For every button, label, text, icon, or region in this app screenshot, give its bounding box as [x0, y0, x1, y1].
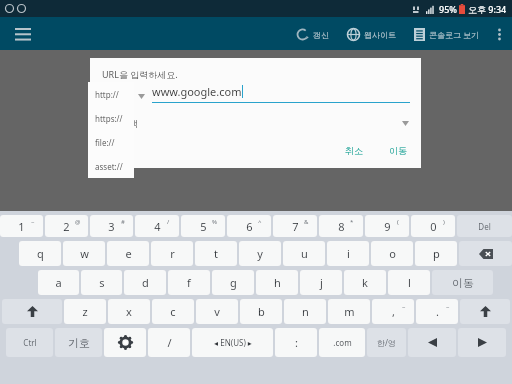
button[interactable]: Left: [408, 328, 456, 357]
staticText: o: [389, 246, 396, 261]
button[interactable]: ◂ EN(US) ▸: [192, 328, 273, 357]
button[interactable]: y: [239, 241, 281, 266]
button[interactable]: a: [38, 270, 79, 295]
button[interactable]: 0: [411, 215, 455, 237]
button[interactable]: 갱신: [294, 24, 331, 45]
button[interactable]: f: [168, 270, 210, 295]
staticText: q: [37, 246, 44, 261]
staticText: 오후 9:34: [468, 3, 507, 15]
staticText: 한/영: [377, 337, 396, 348]
button[interactable]: 4: [135, 215, 179, 237]
button[interactable]: .com: [319, 328, 365, 357]
button[interactable]: Settings: [104, 328, 146, 357]
button[interactable]: 콘솔로그 보기: [412, 24, 482, 45]
staticText: d: [142, 275, 149, 290]
staticText: URL을 입력하세요.: [102, 68, 178, 80]
button[interactable]: w: [63, 241, 105, 266]
staticText: 취소: [345, 145, 363, 156]
staticText: −: [402, 304, 406, 312]
staticText: 웹사이트: [364, 30, 396, 40]
button[interactable]: t: [195, 241, 237, 266]
staticText: p: [433, 246, 440, 261]
button[interactable]: h: [256, 270, 298, 295]
staticText: i: [347, 246, 350, 261]
button[interactable]: Ctrl: [6, 328, 53, 357]
button[interactable]: :: [275, 328, 317, 357]
button[interactable]: Shift: [460, 299, 510, 324]
button[interactable]: file://: [88, 130, 134, 154]
button[interactable]: 기호: [55, 328, 102, 357]
button[interactable]: 7: [273, 215, 317, 237]
staticText: 갱신: [313, 30, 329, 40]
button[interactable]: 선택: [102, 114, 409, 132]
button[interactable]: l: [388, 270, 430, 295]
button[interactable]: u: [283, 241, 325, 266]
button[interactable]: p: [415, 241, 457, 266]
button[interactable]: 한/영: [367, 328, 406, 357]
button[interactable]: o: [371, 241, 413, 266]
button[interactable]: e: [107, 241, 149, 266]
button[interactable]: k: [344, 270, 386, 295]
staticText: Ctrl: [23, 337, 37, 348]
button[interactable]: http://: [88, 82, 134, 106]
staticText: https://: [95, 113, 123, 124]
button[interactable]: 5: [181, 215, 225, 237]
staticText: 7: [292, 219, 299, 234]
button[interactable]: Right: [458, 328, 506, 357]
button[interactable]: s: [81, 270, 122, 295]
button[interactable]: v: [196, 299, 238, 324]
staticText: asset://: [95, 161, 123, 172]
button[interactable]: 6: [227, 215, 271, 237]
button[interactable]: https://: [88, 106, 134, 130]
button[interactable]: z: [64, 299, 106, 324]
button[interactable]: j: [300, 270, 342, 295]
staticText: 4: [154, 219, 161, 234]
staticText: t: [214, 246, 218, 261]
staticText: b: [258, 304, 265, 319]
staticText: ): [443, 218, 445, 226]
button[interactable]: 3: [90, 215, 133, 237]
staticText: .: [436, 304, 439, 319]
staticText: %: [212, 218, 217, 226]
button[interactable]: Shift: [2, 299, 62, 324]
button[interactable]: 9: [365, 215, 409, 237]
button[interactable]: i: [327, 241, 369, 266]
button[interactable]: 2: [45, 215, 88, 237]
staticText: f: [187, 275, 191, 290]
button[interactable]: Del: [457, 215, 512, 237]
staticText: −: [446, 304, 450, 312]
button[interactable]: r: [151, 241, 193, 266]
staticText: /: [167, 218, 170, 226]
button[interactable]: ,: [372, 299, 414, 324]
staticText: ,: [392, 304, 395, 319]
button[interactable]: 8: [319, 215, 363, 237]
button[interactable]: x: [108, 299, 150, 324]
button[interactable]: Backspace: [459, 241, 512, 266]
staticText: 선택: [120, 118, 138, 129]
button[interactable]: .: [416, 299, 458, 324]
button[interactable]: d: [124, 270, 166, 295]
button[interactable]: c: [152, 299, 194, 324]
staticText: x: [126, 304, 132, 319]
button[interactable]: 1: [0, 215, 43, 237]
button[interactable]: b: [240, 299, 282, 324]
button[interactable]: 이동: [432, 270, 493, 295]
staticText: m: [344, 304, 355, 319]
button[interactable]: g: [212, 270, 254, 295]
button[interactable]: More options: [490, 20, 508, 48]
button[interactable]: asset://: [88, 154, 134, 178]
button[interactable]: Menu: [10, 21, 36, 47]
button[interactable]: 이동: [381, 141, 415, 160]
staticText: l: [408, 275, 411, 290]
button[interactable]: /: [148, 328, 190, 357]
button[interactable]: m: [328, 299, 370, 324]
button[interactable]: q: [19, 241, 61, 266]
button[interactable]: 취소: [337, 141, 371, 160]
staticText: &: [304, 218, 309, 226]
staticText: 0: [430, 219, 437, 234]
staticText: @: [75, 218, 81, 226]
staticText: 1: [18, 219, 25, 234]
staticText: *: [350, 218, 354, 226]
button[interactable]: n: [284, 299, 326, 324]
button[interactable]: 웹사이트: [345, 24, 398, 45]
